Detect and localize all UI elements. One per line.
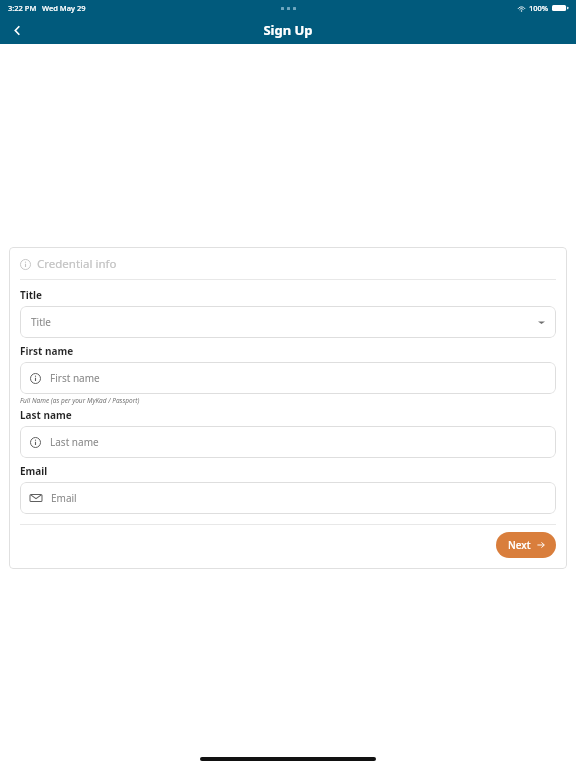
staticText: Title: [20, 288, 43, 302]
staticText: 100%: [529, 3, 549, 13]
staticText: Email: [20, 464, 48, 478]
button[interactable]: Title: [20, 306, 556, 338]
staticText: Last name: [50, 435, 99, 449]
staticText: Credential info: [37, 256, 117, 272]
staticText: First name: [20, 344, 74, 358]
staticText: 3:22 PM: [8, 3, 37, 13]
staticText: Wed May 29: [42, 3, 86, 13]
staticText: Full Name (as per your MyKad / Passport): [20, 396, 140, 405]
staticText: First name: [50, 371, 100, 385]
staticText: Sign Up: [263, 21, 313, 39]
staticText: Email: [51, 491, 77, 505]
staticText: Title: [31, 315, 51, 329]
button[interactable]: Next: [496, 532, 556, 558]
button[interactable]: Back: [0, 16, 34, 44]
button[interactable]: First name: [20, 362, 556, 394]
staticText: Last name: [20, 408, 72, 422]
button[interactable]: Last name: [20, 426, 556, 458]
button[interactable]: Email: [20, 482, 556, 514]
staticText: Next: [508, 538, 531, 552]
